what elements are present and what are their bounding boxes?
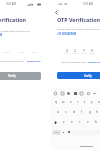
staticText: Verify	[84, 74, 92, 78]
button[interactable]: r	[74, 97, 81, 107]
button[interactable]: t	[81, 97, 88, 107]
button[interactable]: Keyboard tool 3	[66, 91, 70, 95]
staticText: Didn't receive the OTP?	[0, 59, 25, 62]
button[interactable]: Resend OTP	[27, 59, 41, 62]
button[interactable]: Shift	[52, 117, 59, 127]
button[interactable]	[4, 47, 10, 53]
button[interactable]: z	[59, 117, 68, 127]
button[interactable]: g	[86, 107, 93, 117]
button[interactable]: h	[93, 107, 100, 117]
button[interactable]: b	[92, 117, 100, 127]
staticText: 9	[91, 48, 93, 53]
button[interactable]	[18, 47, 24, 53]
staticText: ?123	[54, 131, 59, 134]
button[interactable]: 4	[64, 48, 70, 54]
staticText: Resend OTP	[27, 59, 41, 62]
staticText: Please enter the 4 digit code sent to yo…	[0, 29, 30, 32]
staticText: e	[70, 100, 72, 104]
button[interactable]	[61, 127, 66, 137]
staticText: z	[63, 120, 65, 124]
button[interactable]: Verify	[57, 72, 100, 79]
staticText: b	[95, 120, 97, 124]
staticText: 9:41 AM	[6, 2, 16, 6]
staticText: v	[87, 120, 89, 124]
staticText: w	[62, 100, 65, 104]
staticText: t	[84, 100, 86, 104]
button[interactable]	[32, 47, 38, 53]
staticText: Resend OTP	[88, 60, 100, 63]
staticText: +91 8374678306	[57, 32, 77, 35]
staticText: Please enter the 4 digit code sent to yo…	[57, 27, 100, 30]
button[interactable]: Keyboard tool 4	[73, 91, 77, 95]
staticText: f	[81, 110, 83, 114]
button[interactable]: Resend OTP	[88, 60, 100, 63]
button[interactable]: y	[88, 97, 95, 107]
staticText: y	[91, 100, 93, 104]
button[interactable]: w	[60, 97, 67, 107]
button[interactable]: s	[62, 107, 70, 117]
button[interactable]: c	[76, 117, 84, 127]
button[interactable]: Numbers	[52, 130, 61, 135]
button[interactable]: f	[78, 107, 86, 117]
staticText: s	[65, 110, 67, 114]
staticText: 7	[83, 48, 85, 53]
staticText: d	[73, 110, 75, 114]
staticText: x	[71, 120, 73, 124]
staticText: 4	[66, 48, 68, 53]
button[interactable]: 7	[81, 48, 87, 54]
button[interactable]: 2	[72, 48, 78, 54]
button[interactable]: d	[70, 107, 78, 117]
button[interactable]: u	[95, 97, 100, 107]
staticText: OTP Verification	[57, 16, 100, 23]
staticText: a	[57, 110, 59, 114]
staticText: u	[98, 100, 100, 104]
staticText: r	[77, 100, 79, 104]
button[interactable]	[66, 127, 71, 137]
button[interactable]: q	[52, 97, 60, 107]
button[interactable]: 9	[89, 48, 95, 54]
staticText: Didn't receive the OTP?	[61, 60, 87, 63]
staticText: c	[79, 120, 81, 124]
button[interactable]: Keyboard tool 2	[60, 91, 64, 95]
button[interactable]: x	[68, 117, 76, 127]
staticText: q	[55, 100, 57, 104]
button[interactable]: a	[54, 107, 62, 117]
staticText: 2	[74, 48, 76, 53]
staticText: g	[89, 110, 91, 114]
staticText: OTP Verification	[0, 16, 27, 23]
staticText: 9:41 AM	[83, 2, 93, 6]
button[interactable]: Keyboard tool 6	[86, 91, 90, 95]
button[interactable]: Keyboard tool 1	[53, 91, 57, 95]
button[interactable]: Verify	[0, 72, 41, 80]
button[interactable]: Keyboard tool 7	[92, 91, 96, 95]
staticText: +91 8374678306	[0, 33, 3, 36]
button[interactable]: e	[67, 97, 74, 107]
button[interactable]: Back	[53, 9, 59, 15]
button[interactable]: Keyboard tool 5	[79, 91, 83, 95]
staticText: Verify	[8, 74, 16, 78]
button[interactable]: v	[84, 117, 92, 127]
staticText: h	[96, 110, 98, 114]
